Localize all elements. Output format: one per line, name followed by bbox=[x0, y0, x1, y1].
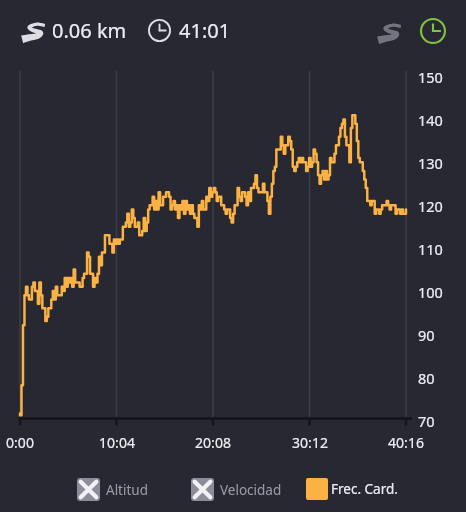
staticText: 40:16 bbox=[376, 433, 436, 452]
staticText: 110 bbox=[418, 239, 443, 259]
staticText: 41:01 bbox=[179, 17, 231, 44]
staticText: Velocidad bbox=[220, 481, 282, 499]
staticText: 120 bbox=[418, 196, 443, 216]
staticText: 30:12 bbox=[280, 433, 340, 452]
staticText: 130 bbox=[418, 153, 443, 173]
button[interactable]: Altitud bbox=[77, 478, 148, 501]
staticText: 100 bbox=[418, 282, 443, 302]
button[interactable]: Frec. Card. bbox=[306, 478, 398, 500]
button[interactable]: Velocidad bbox=[191, 478, 282, 501]
staticText: Altitud bbox=[106, 481, 148, 499]
staticText: 150 bbox=[418, 67, 443, 87]
staticText: 20:08 bbox=[183, 433, 243, 452]
staticText: 0:00 bbox=[0, 433, 50, 452]
staticText: 80 bbox=[418, 368, 435, 388]
staticText: 70 bbox=[418, 411, 435, 431]
staticText: 140 bbox=[418, 110, 443, 130]
staticText: 0.06 km bbox=[52, 17, 127, 44]
staticText: 90 bbox=[418, 325, 435, 345]
button[interactable]: Duration bbox=[411, 9, 455, 53]
button[interactable]: Distance bbox=[367, 9, 411, 53]
staticText: 10:04 bbox=[87, 433, 147, 452]
staticText: Frec. Card. bbox=[331, 480, 398, 498]
